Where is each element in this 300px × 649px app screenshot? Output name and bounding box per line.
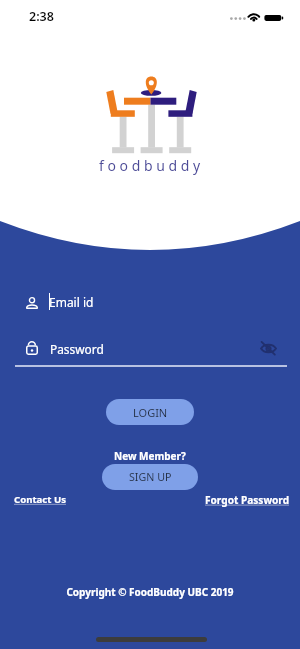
button[interactable]: Password bbox=[14, 338, 300, 360]
staticText: 2:38 bbox=[29, 8, 54, 25]
button[interactable]: Contact Us bbox=[14, 493, 66, 506]
button[interactable]: Forgot Password bbox=[205, 493, 290, 507]
button[interactable]: Show password bbox=[251, 331, 285, 365]
staticText: SIGN UP bbox=[129, 470, 172, 485]
staticText: Copyright © FoodBuddy UBC 2019 bbox=[0, 585, 300, 599]
button[interactable]: LOGIN bbox=[106, 399, 194, 425]
staticText: Password bbox=[50, 341, 104, 357]
button[interactable]: SIGN UP bbox=[102, 464, 198, 490]
staticText: LOGIN bbox=[133, 405, 168, 420]
button[interactable]: Email id bbox=[14, 292, 300, 314]
staticText: Contact Us bbox=[14, 493, 66, 506]
staticText: Forgot Password bbox=[205, 493, 290, 507]
staticText: Email id bbox=[49, 294, 94, 310]
staticText: f o o d b u d d y bbox=[99, 156, 201, 175]
staticText: New Member? bbox=[114, 449, 186, 463]
